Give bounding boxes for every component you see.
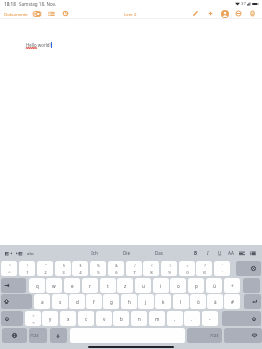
- button[interactable]: r: [82, 278, 98, 293]
- button[interactable]: Tab: [1, 278, 26, 293]
- button[interactable]: m: [149, 311, 165, 326]
- button[interactable]: Das: [150, 245, 168, 261]
- button[interactable]: B: [192, 245, 200, 261]
- staticText: Hello world!: [26, 42, 51, 48]
- button[interactable]: c: [78, 311, 94, 326]
- button[interactable]: §: [55, 261, 71, 276]
- button[interactable]: Outline: [48, 8, 55, 19]
- staticText: j: [145, 299, 147, 305]
- button[interactable]: Die: [117, 245, 135, 261]
- button[interactable]: !: [19, 261, 35, 276]
- button[interactable]: Shift: [1, 311, 23, 326]
- button[interactable]: ): [161, 261, 177, 276]
- button[interactable]: p: [188, 278, 204, 293]
- button[interactable]: Dokumente: [4, 8, 28, 19]
- button[interactable]: x: [60, 311, 76, 326]
- button[interactable]: +: [224, 278, 240, 293]
- button[interactable]: l: [173, 294, 189, 309]
- staticText: y: [49, 316, 52, 322]
- button[interactable]: Leer 2: [124, 8, 137, 19]
- button[interactable]: ,: [167, 311, 183, 326]
- button[interactable]: ": [37, 261, 53, 276]
- button[interactable]: w: [46, 278, 62, 293]
- button[interactable]: ü: [206, 278, 222, 293]
- button[interactable]: =: [179, 261, 195, 276]
- button[interactable]: h: [121, 294, 137, 309]
- button[interactable]: Format: [192, 8, 199, 19]
- button[interactable]: Decrease indent: [5, 245, 12, 261]
- button[interactable]: More: [249, 8, 256, 19]
- button[interactable]: u: [135, 278, 151, 293]
- staticText: ?123: [210, 333, 219, 338]
- button[interactable]: [243, 278, 260, 293]
- button[interactable]: n: [131, 311, 147, 326]
- staticText: u: [142, 283, 145, 289]
- button[interactable]: Hide keyboard: [224, 328, 262, 343]
- button[interactable]: Caps lock: [1, 294, 32, 309]
- button[interactable]: Lists: [250, 245, 256, 261]
- button[interactable]: f: [86, 294, 102, 309]
- button[interactable]: s: [52, 294, 68, 309]
- button[interactable]: Alignment: [239, 245, 245, 261]
- button[interactable]: Share: [235, 8, 242, 19]
- button[interactable]: °: [1, 261, 17, 276]
- button[interactable]: Insert: [207, 8, 214, 19]
- staticText: x: [67, 316, 70, 322]
- button[interactable]: ?123: [187, 328, 222, 343]
- button[interactable]: U: [216, 245, 224, 261]
- button[interactable]: ö: [190, 294, 206, 309]
- button[interactable]: b: [113, 311, 129, 326]
- button[interactable]: Enter: [244, 294, 261, 309]
- staticText: %: [97, 263, 100, 268]
- button[interactable]: v: [96, 311, 112, 326]
- button[interactable]: Voice input: [50, 328, 67, 343]
- button[interactable]: $: [72, 261, 88, 276]
- staticText: ß: [203, 269, 206, 275]
- button[interactable]: o: [170, 278, 186, 293]
- staticText: h: [128, 299, 131, 305]
- button[interactable]: I: [204, 245, 212, 261]
- staticText: b: [120, 316, 123, 322]
- staticText: -: [209, 316, 211, 322]
- button[interactable]: -: [202, 311, 218, 326]
- button[interactable]: Shift: [222, 311, 261, 326]
- button[interactable]: &: [108, 261, 124, 276]
- button[interactable]: (: [143, 261, 159, 276]
- button[interactable]: Increase indent: [16, 245, 23, 261]
- button[interactable]: ?: [196, 261, 212, 276]
- button[interactable]: Page layout: [33, 8, 41, 19]
- button[interactable]: .: [184, 311, 200, 326]
- button[interactable]: Ich: [85, 245, 103, 261]
- button[interactable]: #: [224, 294, 240, 309]
- button[interactable]: d: [69, 294, 85, 309]
- staticText: ö: [197, 299, 200, 305]
- button[interactable]: Change language: [2, 328, 27, 343]
- button[interactable]: ?123: [29, 328, 47, 343]
- button[interactable]: Backspace: [236, 261, 261, 276]
- staticText: 7: [133, 269, 136, 275]
- button[interactable]: abc: [27, 245, 35, 261]
- button[interactable]: %: [90, 261, 106, 276]
- button[interactable]: z: [117, 278, 133, 293]
- staticText: g: [110, 299, 113, 305]
- button[interactable]: g: [103, 294, 119, 309]
- staticText: !: [27, 263, 28, 268]
- button[interactable]: e: [64, 278, 80, 293]
- button[interactable]: ä: [207, 294, 223, 309]
- button[interactable]: q: [29, 278, 45, 293]
- button[interactable]: AA: [227, 245, 235, 261]
- staticText: l: [180, 299, 182, 305]
- staticText: #: [231, 299, 234, 305]
- button[interactable]: i: [153, 278, 169, 293]
- button[interactable]: j: [138, 294, 154, 309]
- button[interactable]: y: [42, 311, 58, 326]
- button[interactable]: a: [34, 294, 50, 309]
- button[interactable]: Account: [221, 8, 229, 19]
- button[interactable]: k: [155, 294, 171, 309]
- button[interactable]: >: [25, 311, 41, 326]
- button[interactable]: /: [126, 261, 142, 276]
- button[interactable]: `: [214, 261, 230, 276]
- button[interactable]: Recents: [62, 8, 69, 19]
- button[interactable]: t: [100, 278, 116, 293]
